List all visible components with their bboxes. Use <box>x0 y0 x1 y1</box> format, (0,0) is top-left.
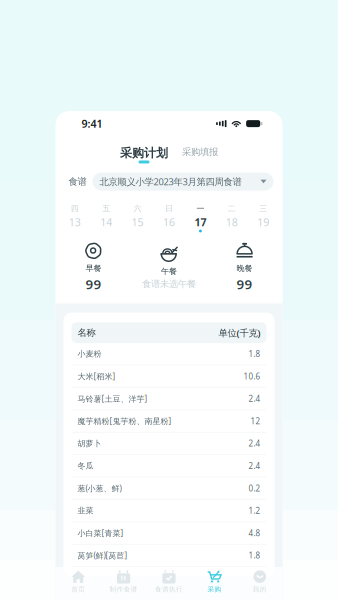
button[interactable]: 胡萝卜 <box>71 433 266 455</box>
staticText: 食谱 <box>68 176 86 187</box>
staticText: 2.4 <box>248 438 260 449</box>
staticText: 一 <box>196 204 204 213</box>
button[interactable]: 采购 <box>192 567 237 600</box>
staticText: 二 <box>228 204 236 213</box>
staticText: 早餐 <box>85 263 101 273</box>
button[interactable]: 我的 <box>237 567 282 600</box>
staticText: 日 <box>165 204 173 213</box>
staticText: 12 <box>250 416 260 426</box>
staticText: 三 <box>259 204 267 213</box>
staticText: 采购 <box>207 585 221 593</box>
staticText: 小麦粉 <box>77 349 101 359</box>
button[interactable]: 小麦粉 <box>71 343 266 365</box>
button[interactable]: 六 <box>122 203 153 232</box>
staticText: 食谱未选午餐 <box>142 278 196 290</box>
staticText: 首页 <box>71 585 85 593</box>
staticText: 19 <box>257 215 269 229</box>
staticText: 采购计划 <box>120 146 168 160</box>
staticText: 1.8 <box>248 349 260 359</box>
button[interactable]: 三 <box>247 203 279 232</box>
button[interactable]: 二 <box>216 203 247 232</box>
staticText: 魔芋精粉[鬼芋粉、南星粉] <box>77 416 171 426</box>
button[interactable]: 冬瓜 <box>71 455 266 477</box>
staticText: 10.6 <box>243 371 260 382</box>
staticText: 我的 <box>253 585 267 593</box>
staticText: 韭菜 <box>77 506 93 516</box>
staticText: 99 <box>237 275 253 293</box>
staticText: 五 <box>102 204 110 213</box>
button[interactable]: 五 <box>90 203 122 232</box>
button[interactable]: 早餐 <box>56 246 131 296</box>
button[interactable]: 一 <box>185 203 216 232</box>
staticText: 小白菜[青菜] <box>77 528 123 538</box>
staticText: 晚餐 <box>237 263 253 273</box>
button[interactable]: 小白菜[青菜] <box>71 522 266 545</box>
staticText: 单位(千克) <box>218 326 260 339</box>
staticText: 17 <box>194 215 206 229</box>
staticText: 13 <box>69 215 81 229</box>
button[interactable]: 韭菜 <box>71 500 266 522</box>
button[interactable]: 制作食谱 <box>101 567 146 600</box>
button[interactable]: 首页 <box>55 567 101 600</box>
staticText: 1.8 <box>248 550 260 561</box>
button[interactable]: 采购填报 <box>182 146 218 165</box>
staticText: 葱(小葱、鲜) <box>77 483 121 494</box>
button[interactable]: 葱(小葱、鲜) <box>71 477 266 500</box>
button[interactable]: 四 <box>59 203 90 232</box>
staticText: 午餐 <box>161 266 177 276</box>
staticText: 14 <box>100 215 112 229</box>
button[interactable]: 采购计划 <box>120 146 168 165</box>
staticText: 马铃薯[土豆、洋芋] <box>77 393 147 404</box>
staticText: 1.2 <box>248 505 260 516</box>
button[interactable]: 北京顺义小学2023年3月第四周食谱 <box>92 173 273 191</box>
staticText: 六 <box>134 204 142 213</box>
staticText: 冬瓜 <box>77 461 93 471</box>
staticText: 胡萝卜 <box>77 439 101 448</box>
staticText: 2.4 <box>248 393 260 404</box>
staticText: 18 <box>226 215 238 229</box>
button[interactable]: 莴笋(鲜)[莴苣] <box>71 545 266 567</box>
button[interactable]: 魔芋精粉[鬼芋粉、南星粉] <box>71 410 266 433</box>
button[interactable]: 晚餐 <box>207 246 282 296</box>
staticText: 大米[稻米] <box>77 371 115 382</box>
staticText: 9:41 <box>81 116 102 131</box>
staticText: 16 <box>163 215 175 229</box>
button[interactable]: 午餐 <box>131 246 207 296</box>
staticText: 北京顺义小学2023年3月第四周食谱 <box>99 175 241 188</box>
staticText: 15 <box>132 215 144 229</box>
staticText: 2.4 <box>248 461 260 471</box>
button[interactable]: 日 <box>153 203 185 232</box>
button[interactable]: 马铃薯[土豆、洋芋] <box>71 388 266 410</box>
button[interactable]: 大米[稻米] <box>71 365 266 388</box>
staticText: 采购填报 <box>182 146 218 158</box>
button[interactable]: 食谱执行 <box>146 567 192 600</box>
staticText: 0.2 <box>248 483 260 494</box>
staticText: 99 <box>85 275 101 293</box>
staticText: 4.8 <box>248 528 260 538</box>
staticText: 食谱执行 <box>155 585 183 593</box>
staticText: 四 <box>71 204 79 213</box>
staticText: 名称 <box>77 327 95 338</box>
staticText: 制作食谱 <box>110 585 138 593</box>
staticText: 莴笋(鲜)[莴苣] <box>77 550 127 561</box>
